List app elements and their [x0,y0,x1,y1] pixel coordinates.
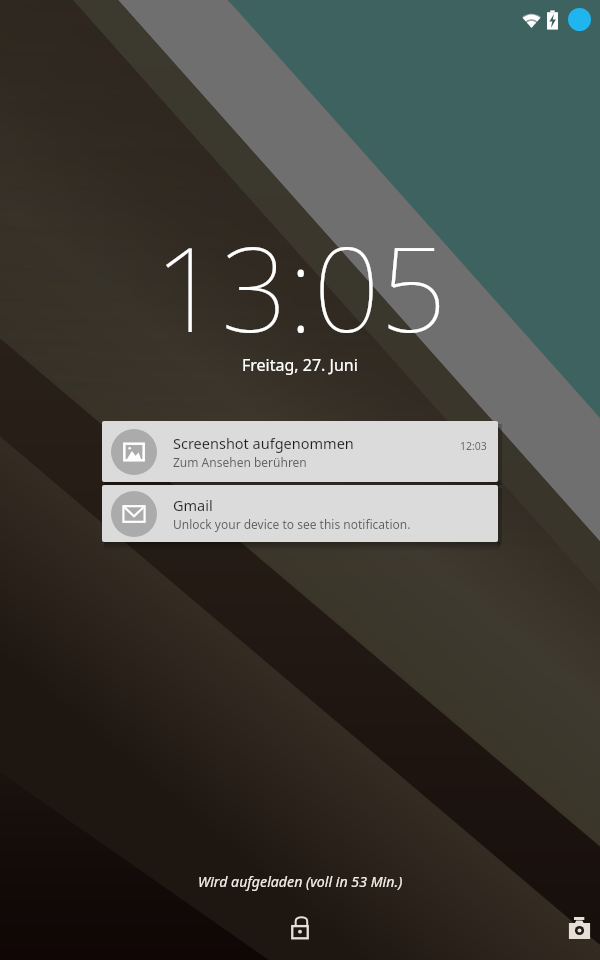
button[interactable]: Gmail [102,485,498,542]
staticText: Screenshot aufgenommen [173,433,354,453]
staticText: Unlock your device to see this notificat… [173,516,411,532]
other: Battery charging [546,10,559,30]
staticText: Wird aufgeladen (voll in 53 Min.) [198,872,403,891]
staticText: 12:03 [460,439,487,453]
other: Wi-Fi signal [522,12,541,28]
button[interactable]: Screenshot aufgenommen [102,421,498,482]
staticText: Zum Ansehen berühren [173,454,307,470]
button[interactable]: Camera [558,906,600,948]
button[interactable]: Unlock [279,906,321,948]
staticText: 13:05 [154,207,447,366]
staticText: Gmail [173,495,213,515]
button[interactable]: User profile [568,8,591,31]
staticText: Freitag, 27. Juni [242,354,358,376]
